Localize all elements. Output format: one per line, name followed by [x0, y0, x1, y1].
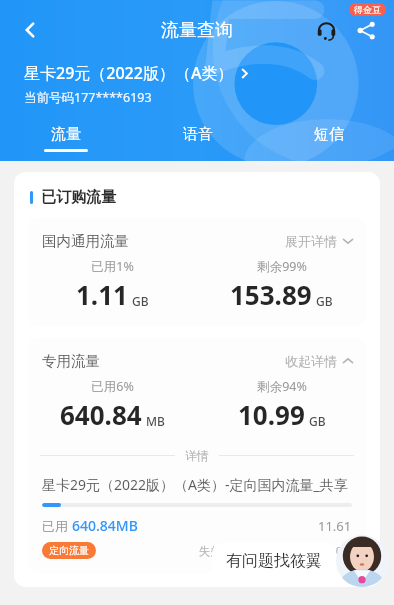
button[interactable]: 国内通用流量: [28, 218, 366, 250]
button[interactable]: 专用流量: [28, 338, 366, 370]
staticText: 已订购流量: [41, 188, 116, 207]
staticText: GB: [316, 293, 333, 309]
staticText: 当前号码177****6193: [24, 89, 152, 106]
button[interactable]: 有问题找筱翼: [212, 543, 336, 579]
staticText: 专用流量: [42, 352, 100, 370]
staticText: 失效时间：2023-07-01 00:00:: [199, 543, 352, 559]
button[interactable]: Back: [8, 8, 52, 52]
button[interactable]: Assistant: [336, 535, 388, 587]
staticText: GB: [309, 413, 326, 429]
staticText: 640.84: [60, 397, 142, 432]
staticText: 收起详情: [285, 353, 337, 369]
staticText: 有问题找筱翼: [226, 551, 322, 571]
button[interactable]: 语音: [132, 115, 263, 161]
staticText: 星卡29元（2022版）（A类）-定向国内流量_共享: [42, 475, 348, 494]
staticText: 短信: [314, 125, 344, 144]
staticText: 定向流量: [49, 544, 89, 557]
button[interactable]: Share: [346, 10, 386, 50]
button[interactable]: 短信: [263, 115, 394, 161]
staticText: 详情: [185, 448, 209, 463]
staticText: 得金豆: [354, 4, 381, 15]
staticText: 已用: [42, 517, 72, 535]
staticText: 展开详情: [285, 233, 337, 249]
button[interactable]: 得金豆: [349, 3, 386, 16]
staticText: MB: [146, 413, 165, 429]
staticText: 10.99: [238, 397, 305, 432]
staticText: 1.11: [76, 277, 128, 312]
staticText: 星卡29元（2022版）（A类）: [24, 62, 234, 84]
staticText: 流量: [51, 125, 81, 144]
button[interactable]: Customer service: [306, 10, 346, 50]
staticText: 国内通用流量: [42, 232, 129, 250]
staticText: 剩余94%: [257, 378, 307, 395]
staticText: 153.89: [230, 277, 312, 312]
button[interactable]: 流量: [0, 115, 132, 161]
staticText: 11.61: [318, 517, 352, 535]
button[interactable]: 星卡29元（2022版）（A类）: [24, 62, 251, 84]
staticText: 剩余99%: [257, 258, 307, 275]
staticText: GB: [132, 293, 149, 309]
staticText: 已用1%: [91, 258, 134, 275]
staticText: 已用6%: [91, 378, 134, 395]
staticText: 流量查询: [161, 19, 233, 42]
staticText: 语音: [183, 125, 213, 144]
staticText: 640.84MB: [72, 516, 138, 535]
